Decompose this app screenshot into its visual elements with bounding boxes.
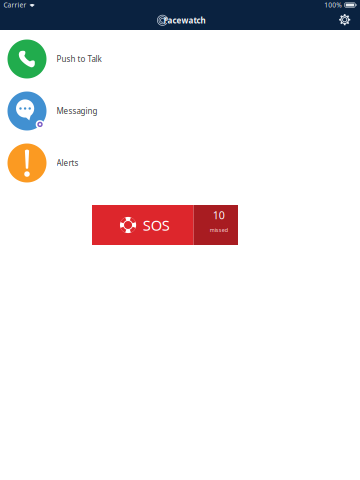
- staticText: 10: [213, 208, 225, 222]
- staticText: SOS: [143, 215, 170, 235]
- button[interactable]: Push to Talk: [0, 33, 360, 85]
- button[interactable]: Messaging: [0, 85, 360, 137]
- button[interactable]: Alerts: [0, 137, 360, 189]
- button[interactable]: Settings: [336, 11, 353, 29]
- staticText: Facewatch: [163, 15, 205, 26]
- staticText: Alerts: [56, 158, 78, 168]
- staticText: Carrier: [3, 1, 26, 9]
- staticText: Push to Talk: [56, 54, 101, 64]
- staticText: Messaging: [56, 106, 97, 116]
- staticText: missed: [210, 226, 228, 233]
- button[interactable]: SOS: [92, 205, 238, 245]
- staticText: 100%: [324, 1, 342, 9]
